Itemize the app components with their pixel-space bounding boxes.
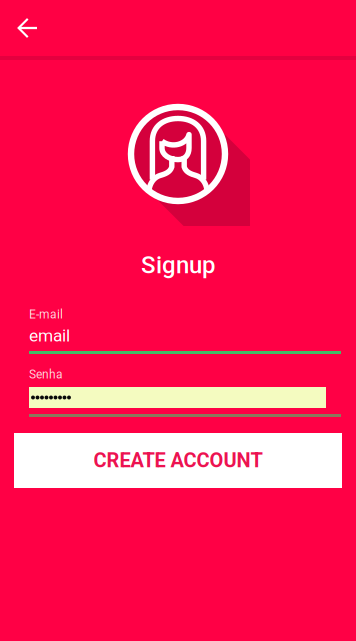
- staticText: CREATE ACCOUNT: [93, 449, 262, 472]
- staticText: Signup: [141, 251, 215, 279]
- staticText: email: [29, 325, 70, 346]
- staticText: E-mail: [29, 307, 63, 322]
- button[interactable]: CREATE ACCOUNT: [14, 433, 342, 488]
- staticText: Senha: [29, 367, 63, 382]
- button[interactable]: Back: [8, 8, 48, 48]
